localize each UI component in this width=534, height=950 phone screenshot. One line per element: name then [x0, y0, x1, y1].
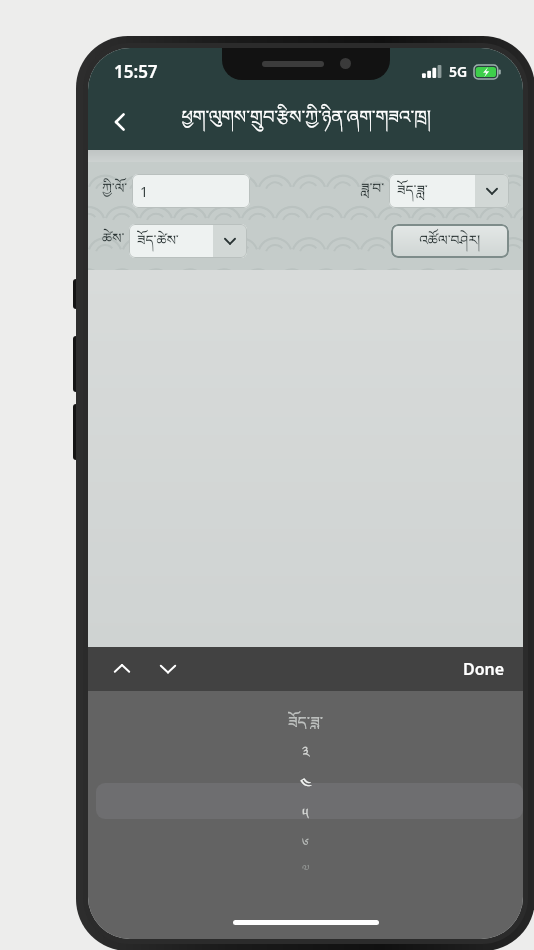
staticText: ༧	[302, 855, 310, 879]
staticText: 15:57	[114, 60, 158, 83]
staticText: 1	[140, 182, 149, 201]
button[interactable]: ༣	[88, 735, 523, 759]
staticText: ༥	[302, 797, 309, 821]
staticText: ༤	[300, 765, 312, 789]
staticText: Done	[463, 658, 505, 680]
button[interactable]: Next field	[148, 649, 188, 689]
staticText: ཀྱི་ལོ་	[102, 172, 128, 211]
button[interactable]: 1	[132, 174, 250, 208]
staticText: ༦	[302, 827, 310, 851]
staticText: 5G	[449, 62, 468, 81]
button[interactable]: འཚོལ་བཤེར།	[391, 224, 509, 258]
staticText: ཟོད་ཚེས་	[137, 224, 213, 258]
button[interactable]: Back	[98, 100, 142, 144]
staticText: ཟོད་ཟླ་	[288, 705, 324, 729]
staticText: ཕྱག་ལུགས་གྲུབ་རྩིས་ཀྱི་ཉིན་ཞག་གཟའ་ཁྲ།	[181, 97, 431, 148]
button[interactable]: Previous field	[102, 649, 142, 689]
staticText: ༣	[302, 735, 310, 759]
button[interactable]: ཟོད་ཚེས་	[129, 224, 247, 258]
staticText: ཚེས་	[102, 222, 125, 261]
button[interactable]: ༦	[88, 827, 523, 851]
button[interactable]: ཟོད་ཟླ་	[389, 174, 509, 208]
button[interactable]: Done	[445, 650, 523, 688]
staticText: འཚོལ་བཤེར།	[419, 224, 481, 258]
staticText: ཟླ་བ་	[361, 172, 385, 211]
button[interactable]: ༥	[88, 797, 523, 821]
staticText: ཟོད་ཟླ་	[397, 174, 475, 208]
button[interactable]: ༤	[88, 765, 523, 789]
button[interactable]	[96, 783, 523, 819]
button[interactable]: ཟོད་ཟླ་	[88, 705, 523, 729]
